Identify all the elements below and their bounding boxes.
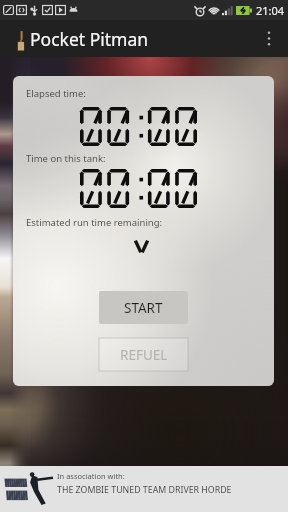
staticText: Estimated run time remaining: — [26, 216, 163, 229]
button[interactable]: START — [99, 291, 188, 324]
button[interactable]: More options — [254, 20, 284, 57]
staticText: Time on this tank: — [26, 152, 106, 165]
staticText: Pocket Pitman — [30, 27, 149, 51]
staticText: START — [124, 299, 163, 317]
staticText: REFUEL — [120, 346, 168, 364]
button[interactable]: REFUEL — [99, 338, 188, 371]
staticText: In association with: — [57, 471, 125, 481]
staticText: 21:04 — [256, 3, 285, 18]
staticText: THE ZOMBIE TUNED TEAM DRIVER HORDE — [57, 484, 232, 496]
staticText: Elapsed time: — [26, 87, 86, 100]
